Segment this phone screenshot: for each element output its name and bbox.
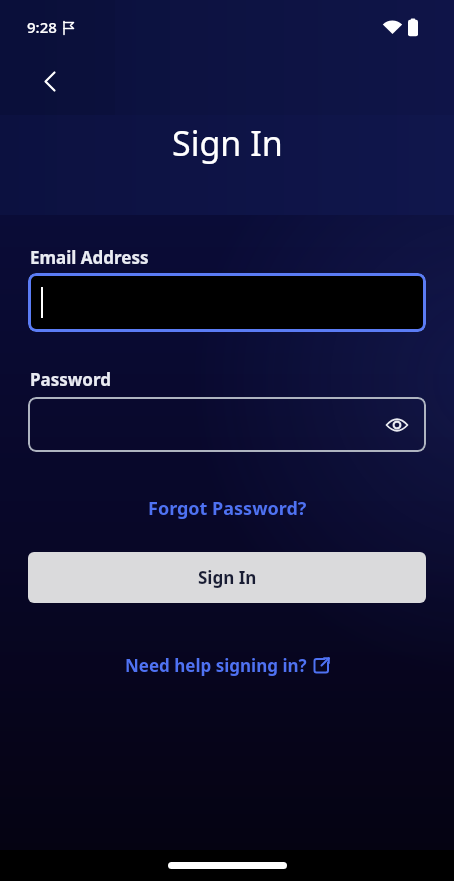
button[interactable] [26,58,74,106]
staticText: Email Address [30,246,149,269]
staticText: 9:28 [27,17,57,37]
button[interactable]: Forgot Password? [148,496,307,521]
staticText: Forgot Password? [148,496,307,521]
button[interactable]: Sign In [28,552,426,603]
staticText: Sign In [198,566,257,589]
button[interactable] [28,397,426,452]
button[interactable]: Need help signing in? [125,654,330,677]
button[interactable] [28,273,426,332]
staticText: Password [30,368,111,391]
staticText: Sign In [172,120,283,166]
staticText: Need help signing in? [125,654,307,677]
